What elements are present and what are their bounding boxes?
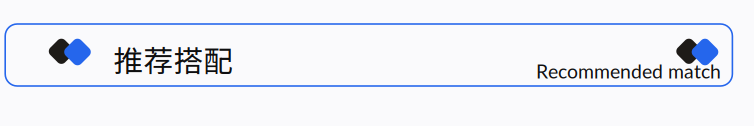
staticText: Recommended match [536, 59, 721, 83]
staticText: 推荐搭配 [114, 38, 234, 80]
